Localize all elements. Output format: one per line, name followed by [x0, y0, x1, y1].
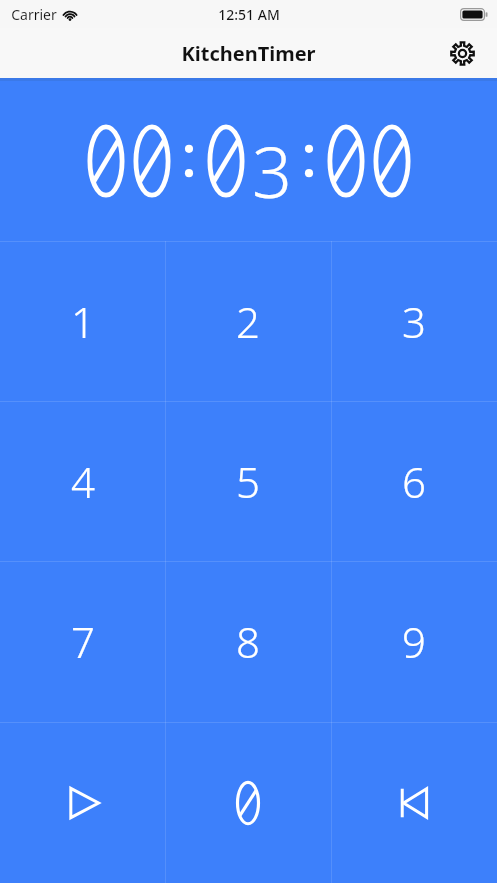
button[interactable]: 5 [165, 401, 331, 561]
staticText: KitchenTimer [181, 40, 316, 67]
staticText: 6 [402, 453, 426, 510]
staticText: 3 [402, 293, 426, 350]
staticText: 5 [236, 453, 260, 510]
button[interactable]: Start timer [0, 722, 165, 883]
staticText: 1 [71, 293, 95, 350]
button[interactable]: 3 [331, 241, 497, 401]
staticText: 7 [71, 613, 95, 670]
button[interactable]: 9 [331, 561, 497, 722]
staticText: 8 [236, 613, 260, 670]
button[interactable]: 1 [0, 241, 165, 401]
button[interactable]: 6 [331, 401, 497, 561]
button[interactable]: 2 [165, 241, 331, 401]
button[interactable]: Reset timer [331, 722, 497, 883]
button[interactable] [165, 722, 331, 883]
staticText: 9 [402, 613, 426, 670]
staticText: 4 [71, 453, 95, 510]
button[interactable]: 7 [0, 561, 165, 722]
staticText: 3 [252, 123, 292, 199]
button[interactable]: 8 [165, 561, 331, 722]
staticText: 12:51 AM [218, 5, 280, 24]
staticText: Carrier [11, 5, 57, 24]
button[interactable]: 4 [0, 401, 165, 561]
staticText: 2 [236, 293, 260, 350]
button[interactable]: Settings [441, 32, 483, 74]
